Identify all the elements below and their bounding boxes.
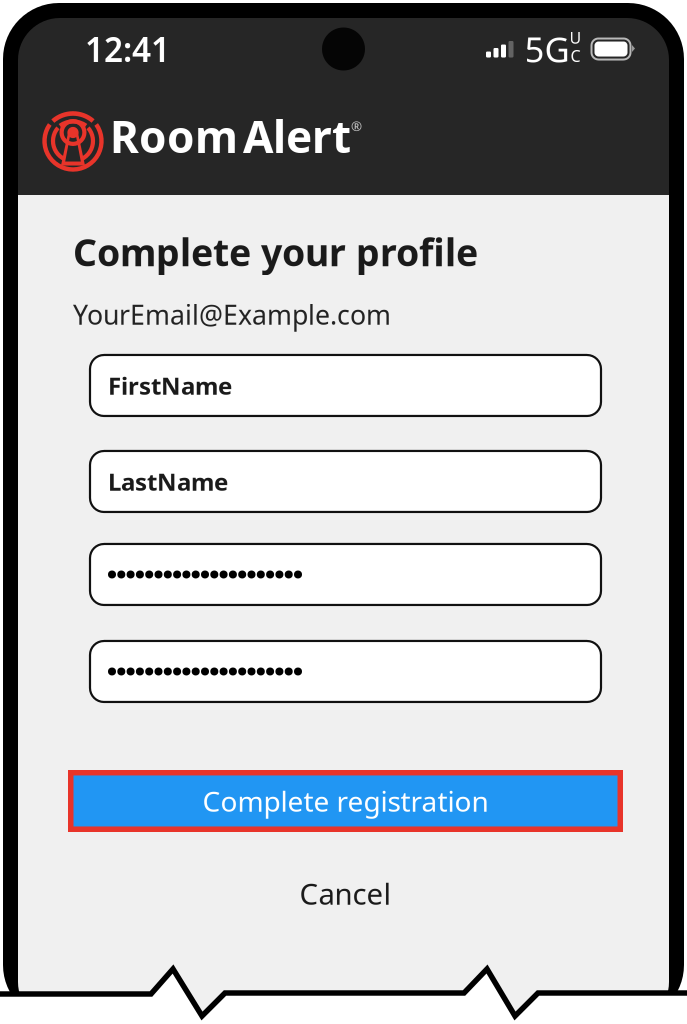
staticText: LastName xyxy=(108,466,228,497)
staticText: 5G xyxy=(524,26,569,72)
button[interactable]: Cancel xyxy=(73,874,618,913)
staticText: C xyxy=(570,45,580,66)
staticText: Room xyxy=(110,107,238,165)
staticText: Complete registration xyxy=(202,782,488,820)
staticText: 12:41 xyxy=(85,27,170,71)
button[interactable] xyxy=(90,544,601,605)
staticText: FirstName xyxy=(108,370,232,401)
staticText: YourEmail@Example.com xyxy=(73,297,391,332)
button[interactable] xyxy=(90,641,601,702)
staticText: U xyxy=(569,27,581,48)
staticText: Cancel xyxy=(299,874,391,913)
button[interactable]: LastName xyxy=(90,451,601,512)
staticText: ® xyxy=(351,117,362,135)
button[interactable]: FirstName xyxy=(90,355,601,416)
staticText: Alert xyxy=(243,107,351,165)
button[interactable]: Complete registration xyxy=(68,770,623,832)
staticText: Complete your profile xyxy=(73,227,478,277)
